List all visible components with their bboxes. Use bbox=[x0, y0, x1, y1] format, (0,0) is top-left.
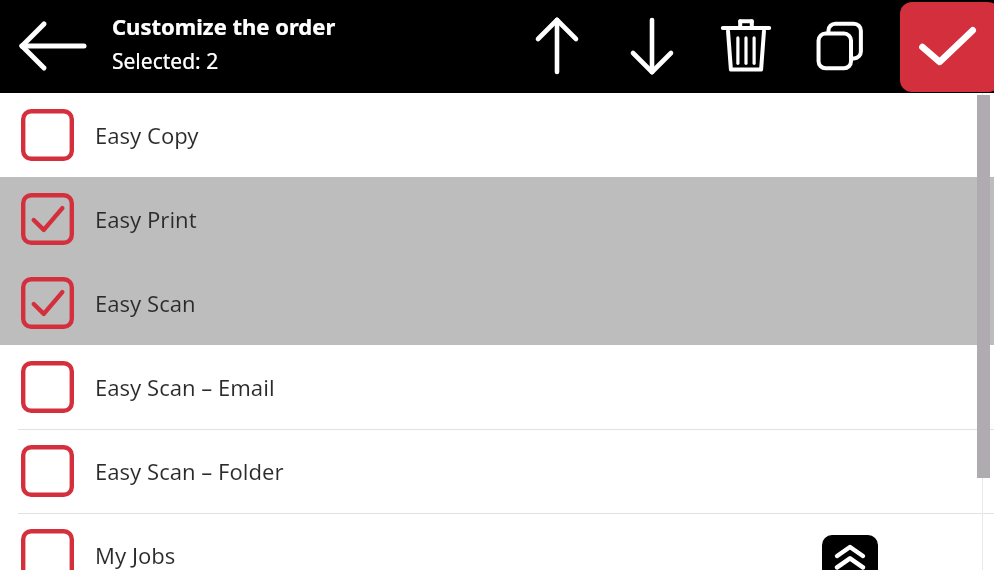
button[interactable]: Easy Scan – Email bbox=[0, 345, 994, 429]
staticText: Easy Print bbox=[95, 204, 197, 234]
staticText: Easy Scan bbox=[95, 288, 196, 318]
staticText: Selected: 2 bbox=[112, 47, 219, 76]
staticText: Easy Scan – Email bbox=[95, 372, 275, 402]
button[interactable]: Move up bbox=[517, 6, 597, 86]
button[interactable]: My Jobs bbox=[0, 513, 994, 570]
button[interactable]: Easy Scan – Folder bbox=[0, 429, 994, 513]
button[interactable]: Scroll to top bbox=[822, 535, 878, 570]
button[interactable]: Duplicate bbox=[800, 6, 880, 86]
button[interactable]: Easy Print bbox=[0, 177, 994, 261]
staticText: Easy Copy bbox=[95, 120, 199, 150]
button[interactable]: Back bbox=[14, 13, 92, 79]
staticText: My Jobs bbox=[95, 540, 176, 570]
button[interactable]: Move down bbox=[612, 6, 692, 86]
button[interactable]: Easy Copy bbox=[0, 93, 994, 177]
button[interactable]: Delete bbox=[706, 6, 786, 86]
button[interactable]: Confirm bbox=[900, 2, 994, 92]
button[interactable]: Easy Scan bbox=[0, 261, 994, 345]
staticText: Customize the order bbox=[112, 11, 336, 41]
staticText: Easy Scan – Folder bbox=[95, 456, 284, 486]
